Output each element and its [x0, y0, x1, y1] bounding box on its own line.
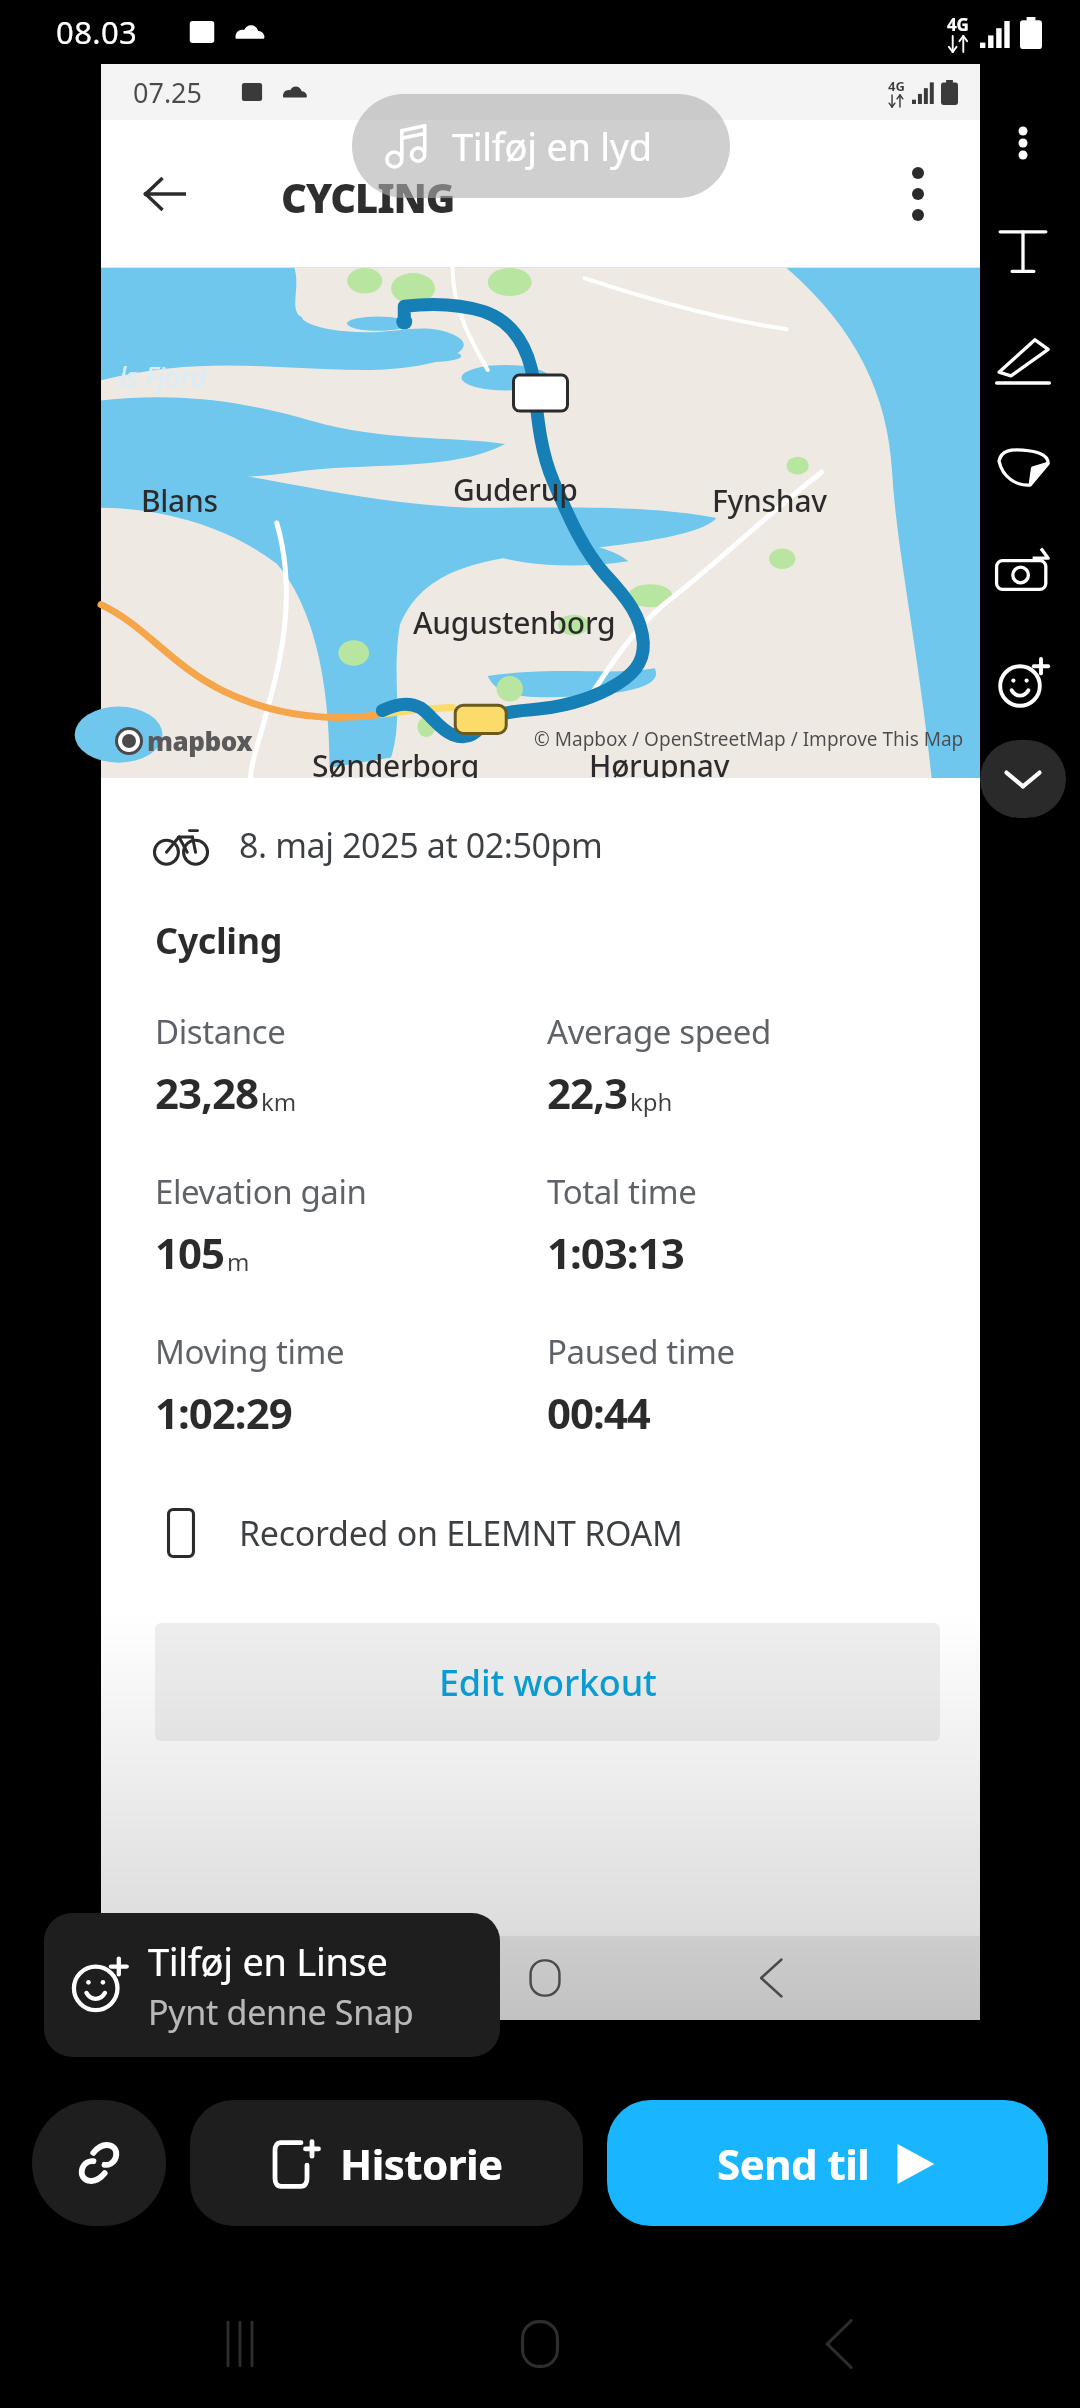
staticText: 22,3: [547, 1064, 628, 1121]
staticText: 105: [155, 1224, 225, 1281]
staticText: Total time: [547, 1169, 697, 1214]
staticText: 8. maj 2025 at 02:50pm: [239, 822, 603, 868]
staticText: Paused time: [547, 1329, 735, 1374]
staticText: Sønderborg: [312, 745, 480, 786]
staticText: Pynt denne Snap: [148, 1989, 414, 2035]
button[interactable]: Home: [480, 2284, 600, 2404]
staticText: Blans: [141, 480, 218, 521]
staticText: Distance: [155, 1009, 286, 1054]
staticText: m: [227, 1245, 250, 1278]
button[interactable]: Stickers: [980, 424, 1066, 510]
button[interactable]: More tools: [980, 740, 1066, 818]
staticText: mapbox: [147, 723, 253, 758]
staticText: 07.25: [133, 74, 203, 111]
button[interactable]: Tilføj en lyd: [352, 94, 730, 198]
staticText: Edit workout: [439, 1658, 657, 1707]
button[interactable]: Add text: [980, 208, 1066, 294]
staticText: 4G: [888, 77, 905, 95]
staticText: CYCLING: [281, 170, 455, 224]
staticText: Tilføj en lyd: [452, 120, 652, 172]
staticText: Hørupnav: [589, 745, 730, 786]
staticText: Augustenborg: [413, 602, 616, 643]
button[interactable]: Historie: [190, 2100, 583, 2226]
staticText: 1:03:13: [547, 1224, 684, 1281]
button[interactable]: Lenses: [980, 640, 1066, 726]
button[interactable]: Send til: [607, 2100, 1048, 2226]
button[interactable]: Back: [123, 152, 207, 236]
button[interactable]: Copy link: [32, 2100, 166, 2226]
staticText: Send til: [717, 2135, 870, 2192]
other: Add a Lens: [66, 1952, 132, 2018]
staticText: kph: [630, 1085, 673, 1118]
staticText: Recorded on ELEMNT ROAM: [239, 1510, 683, 1556]
staticText: 00:44: [547, 1384, 650, 1441]
button[interactable]: Back: [780, 2284, 900, 2404]
staticText: 4G: [947, 13, 969, 36]
button[interactable]: Draw: [980, 316, 1066, 402]
button[interactable]: Edit workout: [155, 1623, 940, 1741]
staticText: Moving time: [155, 1329, 345, 1374]
staticText: 08.03: [56, 11, 138, 53]
staticText: 1:02:29: [155, 1384, 292, 1441]
button[interactable]: More options: [878, 154, 958, 234]
button[interactable]: Recents: [180, 2284, 300, 2404]
staticText: Cycling: [155, 916, 283, 965]
staticText: Fynshav: [712, 480, 827, 521]
staticText: Average speed: [547, 1009, 771, 1054]
staticText: km: [261, 1085, 297, 1118]
button[interactable]: More options: [980, 100, 1066, 186]
staticText: Tilføj en Linse: [148, 1935, 388, 1987]
staticText: Historie: [340, 2135, 503, 2192]
staticText: 23,28: [155, 1064, 259, 1121]
button[interactable]: Crop: [980, 532, 1066, 618]
staticText: Elevation gain: [155, 1169, 367, 1214]
staticText: © Mapbox / OpenStreetMap / Improve This …: [534, 726, 964, 752]
staticText: ls Fjord: [119, 357, 207, 395]
staticText: Guderup: [453, 469, 578, 510]
button[interactable]: Add a Lens: [44, 1913, 500, 2057]
